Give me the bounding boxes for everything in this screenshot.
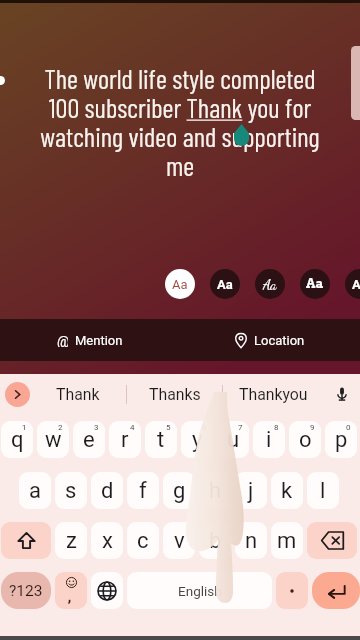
- button[interactable]: Change language: [91, 572, 123, 609]
- button[interactable]: More suggestions: [5, 382, 30, 407]
- button[interactable]: u: [217, 421, 249, 458]
- button[interactable]: z: [55, 522, 87, 559]
- staticText: 7: [238, 423, 243, 432]
- button[interactable]: o: [289, 421, 321, 458]
- staticText: 9: [310, 423, 315, 432]
- staticText: j: [248, 478, 254, 504]
- staticText: 2: [58, 423, 63, 432]
- button[interactable]: Shift: [1, 522, 51, 559]
- button[interactable]: Backspace: [307, 522, 357, 559]
- staticText: Location: [254, 333, 305, 348]
- staticText: m: [277, 528, 297, 554]
- staticText: v: [174, 528, 185, 554]
- button[interactable]: Aa: [210, 269, 240, 299]
- staticText: The world life style completed 100 subsc…: [33, 62, 327, 182]
- staticText: 8: [274, 423, 279, 432]
- button[interactable]: Aa: [300, 269, 330, 299]
- button[interactable]: l: [307, 472, 339, 509]
- other: Location: [235, 333, 247, 348]
- staticText: z: [66, 528, 77, 554]
- staticText: u: [227, 427, 240, 453]
- button[interactable]: q: [1, 421, 33, 458]
- staticText: Aa: [217, 277, 233, 292]
- staticText: t: [157, 427, 165, 453]
- button[interactable]: e: [73, 421, 105, 458]
- button[interactable]: Thank: [30, 374, 126, 414]
- button[interactable]: Mention: [0, 319, 180, 361]
- staticText: a: [29, 478, 41, 504]
- button[interactable]: j: [235, 472, 267, 509]
- staticText: l: [320, 478, 326, 504]
- staticText: 5: [166, 423, 171, 432]
- button[interactable]: Thankyou: [223, 374, 324, 414]
- other: Mention: [57, 334, 68, 347]
- staticText: n: [245, 528, 258, 554]
- button[interactable]: ?123: [1, 572, 51, 609]
- button[interactable]: w: [37, 421, 69, 458]
- staticText: Mention: [75, 333, 123, 348]
- staticText: 3: [94, 423, 99, 432]
- staticText: o: [299, 427, 312, 453]
- staticText: d: [101, 478, 114, 504]
- staticText: Thanks: [149, 385, 201, 404]
- button[interactable]: Thanks: [127, 374, 222, 414]
- staticText: Thank: [56, 385, 100, 404]
- button[interactable]: Enter: [312, 572, 360, 609]
- staticText: x: [102, 528, 113, 554]
- button[interactable]: y: [181, 421, 213, 458]
- button[interactable]: x: [91, 522, 123, 559]
- staticText: @: [57, 334, 68, 347]
- staticText: Aa: [306, 276, 324, 292]
- button[interactable]: d: [91, 472, 123, 509]
- button[interactable]: Voice input: [324, 374, 360, 414]
- button[interactable]: v: [163, 522, 195, 559]
- staticText: e: [83, 427, 95, 453]
- button[interactable]: i: [253, 421, 285, 458]
- button[interactable]: Emoji: [55, 572, 87, 609]
- staticText: ?123: [9, 582, 43, 600]
- staticText: Aa: [263, 276, 277, 293]
- staticText: Aa: [352, 277, 360, 292]
- staticText: Thankyou: [239, 385, 308, 404]
- button[interactable]: b: [199, 522, 231, 559]
- staticText: q: [11, 427, 24, 453]
- staticText: h: [209, 478, 222, 504]
- staticText: 4: [130, 423, 135, 432]
- button[interactable]: g: [163, 472, 195, 509]
- button[interactable]: f: [127, 472, 159, 509]
- button[interactable]: [276, 572, 308, 609]
- button[interactable]: s: [55, 472, 87, 509]
- button[interactable]: h: [199, 472, 231, 509]
- staticText: 0: [346, 423, 351, 432]
- button[interactable]: English: [127, 572, 272, 609]
- button[interactable]: c: [127, 522, 159, 559]
- button[interactable]: r: [109, 421, 141, 458]
- button[interactable]: k: [271, 472, 303, 509]
- button[interactable]: Aa: [165, 269, 195, 299]
- button[interactable]: t: [145, 421, 177, 458]
- staticText: f: [139, 478, 147, 504]
- button[interactable]: m: [271, 522, 303, 559]
- button[interactable]: Aa: [345, 269, 360, 299]
- staticText: 1: [22, 423, 27, 432]
- staticText: k: [281, 478, 293, 504]
- staticText: w: [45, 427, 62, 453]
- staticText: p: [335, 427, 348, 453]
- button[interactable]: n: [235, 522, 267, 559]
- staticText: ,: [68, 588, 71, 606]
- staticText: g: [173, 478, 186, 504]
- button[interactable]: p: [325, 421, 357, 458]
- button[interactable]: a: [19, 472, 51, 509]
- staticText: English: [178, 583, 222, 599]
- staticText: b: [209, 528, 222, 554]
- staticText: y: [192, 427, 203, 453]
- button[interactable]: Aa: [255, 269, 285, 299]
- staticText: Aa: [172, 277, 188, 292]
- staticText: i: [266, 427, 272, 453]
- staticText: c: [137, 528, 149, 554]
- button[interactable]: Location: [180, 319, 360, 361]
- staticText: r: [121, 427, 129, 453]
- staticText: s: [65, 478, 77, 504]
